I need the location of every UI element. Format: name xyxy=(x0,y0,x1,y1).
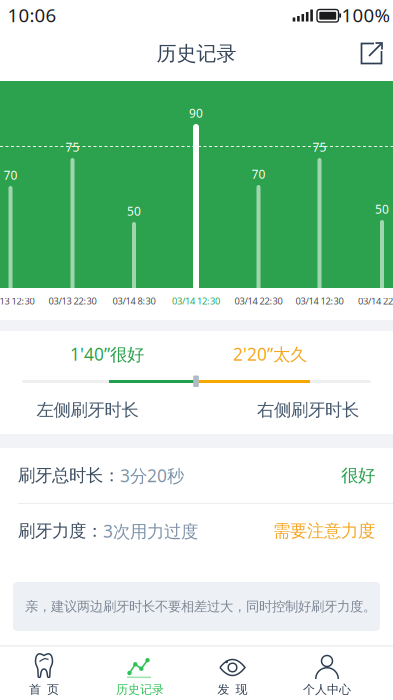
button[interactable]: 个人中心 xyxy=(281,647,373,700)
staticText: 100% xyxy=(341,3,390,27)
staticText: 75 xyxy=(312,139,326,155)
staticText: 刷牙总时长： xyxy=(18,465,120,486)
staticText: 50 xyxy=(375,201,389,217)
staticText: 发 现 xyxy=(217,682,247,697)
staticText: 历史记录 xyxy=(116,682,164,697)
staticText: 刷牙力度： xyxy=(18,520,103,542)
button[interactable]: 发 现 xyxy=(186,647,278,700)
button[interactable] xyxy=(349,31,393,75)
staticText: 03/14 12:30 xyxy=(295,295,343,307)
staticText: 历史记录 xyxy=(156,41,236,66)
staticText: 右侧刷牙时长 xyxy=(257,399,359,421)
button[interactable] xyxy=(228,81,289,311)
button[interactable] xyxy=(289,81,350,311)
staticText: 03/14 22:30 xyxy=(234,295,282,307)
staticText: 2'20”太久 xyxy=(233,342,307,365)
staticText: 3次用力过度 xyxy=(103,519,198,542)
staticText: 首 页 xyxy=(29,682,59,697)
button[interactable] xyxy=(165,81,227,311)
button[interactable] xyxy=(42,81,103,311)
button[interactable] xyxy=(103,81,165,311)
button[interactable]: 历史记录 xyxy=(94,647,186,700)
staticText: 亲，建议两边刷牙时长不要相差过大，同时控制好刷牙力度。 xyxy=(25,598,376,615)
staticText: 70 xyxy=(251,166,265,182)
staticText: 70 xyxy=(3,167,17,183)
staticText: 90 xyxy=(189,105,203,121)
staticText: 03/13 22:30 xyxy=(48,295,96,307)
staticText: 03/14 22:30 xyxy=(358,295,393,307)
staticText: 10:06 xyxy=(7,3,56,27)
button[interactable]: 首 页 xyxy=(0,647,90,700)
button[interactable] xyxy=(0,81,41,311)
staticText: 1'40”很好 xyxy=(70,342,144,365)
staticText: 需要注意力度 xyxy=(273,520,375,542)
staticText: 3分20秒 xyxy=(120,464,184,487)
staticText: 个人中心 xyxy=(303,682,351,697)
staticText: 75 xyxy=(65,139,79,155)
staticText: 03/13 12:30 xyxy=(0,295,34,307)
staticText: 03/14 12:30 xyxy=(172,295,220,307)
staticText: 03/14 8:30 xyxy=(112,295,155,307)
staticText: 左侧刷牙时长 xyxy=(36,399,138,421)
staticText: 很好 xyxy=(341,465,375,486)
staticText: 50 xyxy=(127,203,141,219)
button[interactable] xyxy=(351,81,393,311)
